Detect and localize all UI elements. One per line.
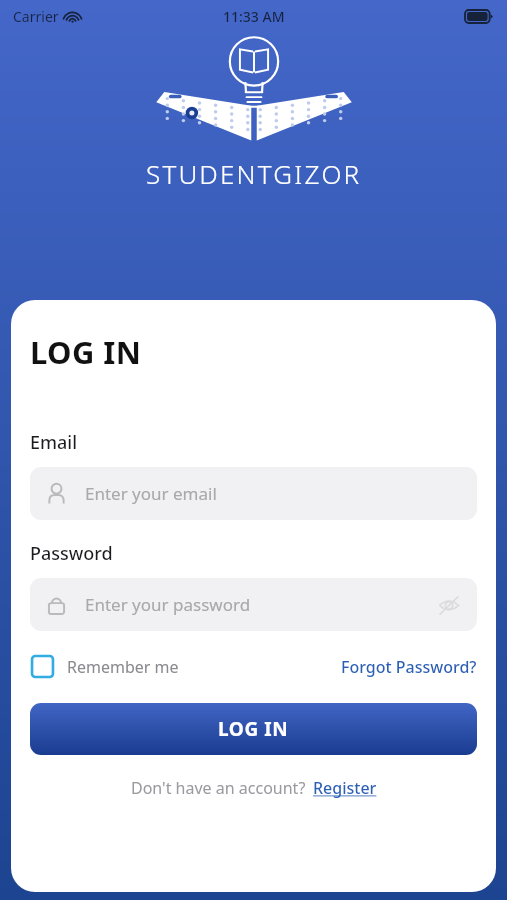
staticText: Remember me [67,656,179,678]
staticText: Email [30,430,78,455]
button[interactable]: Forgot Password? [341,656,477,678]
staticText: Register [313,777,377,799]
staticText: Password [30,541,113,566]
staticText: 11:33 AM [223,7,285,26]
button[interactable]: Remember me [30,654,179,679]
button[interactable]: Enter your password [30,578,477,631]
staticText: Enter your password [85,593,251,616]
button[interactable]: Enter your email [30,467,477,520]
button[interactable]: Register [313,777,377,799]
button[interactable]: LOG IN [30,703,477,755]
staticText: STUDENTGIZOR [146,156,362,191]
staticText: Don't have an account? [131,777,306,799]
staticText: Carrier [13,7,59,26]
button[interactable]: Show password [436,592,462,618]
staticText: LOG IN [30,331,142,373]
staticText: LOG IN [218,716,289,742]
staticText: Forgot Password? [341,656,477,678]
staticText: Enter your email [85,482,217,505]
